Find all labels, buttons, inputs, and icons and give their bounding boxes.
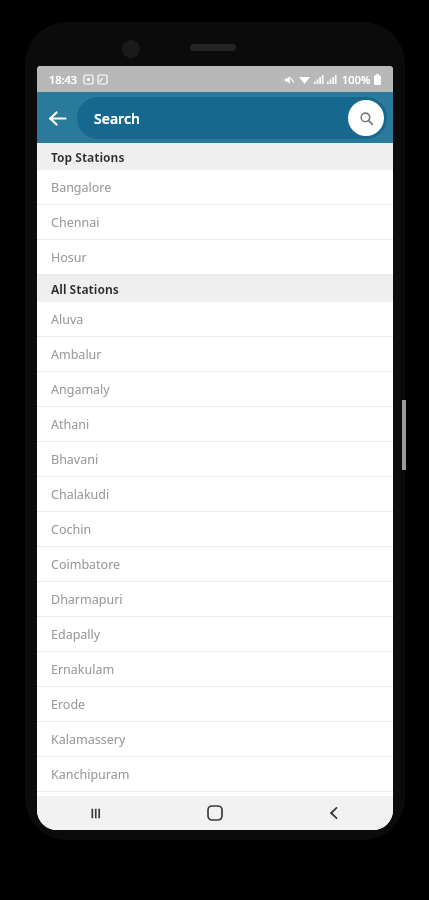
staticText: Angamaly: [51, 381, 110, 398]
staticText: 100%: [342, 72, 371, 87]
staticText: Ambalur: [51, 346, 102, 363]
button[interactable]: Recent apps: [37, 796, 155, 830]
button[interactable]: Home: [155, 796, 274, 830]
button[interactable]: Back: [37, 98, 77, 138]
button[interactable]: Aluva: [37, 302, 393, 337]
staticText: Bangalore: [51, 179, 112, 196]
button[interactable]: Coimbatore: [37, 547, 393, 582]
button[interactable]: Cochin: [37, 512, 393, 547]
button[interactable]: Erode: [37, 687, 393, 722]
staticText: Top Stations: [51, 149, 125, 165]
button[interactable]: Back: [274, 796, 393, 830]
button[interactable]: Ernakulam: [37, 652, 393, 687]
button[interactable]: Chalakudi: [37, 477, 393, 512]
button[interactable]: Kalamassery: [37, 722, 393, 757]
staticText: Bhavani: [51, 451, 99, 468]
button[interactable]: Search: [77, 97, 387, 139]
button[interactable]: Chennai: [37, 205, 393, 240]
staticText: 18:43: [49, 72, 78, 87]
staticText: Hosur: [51, 249, 87, 266]
staticText: Edapally: [51, 626, 101, 643]
staticText: Chalakudi: [51, 486, 110, 503]
staticText: Coimbatore: [51, 556, 121, 573]
staticText: Ernakulam: [51, 661, 115, 678]
button[interactable]: Dharmapuri: [37, 582, 393, 617]
button[interactable]: Bhavani: [37, 442, 393, 477]
button[interactable]: Edapally: [37, 617, 393, 652]
staticText: Aluva: [51, 311, 84, 328]
staticText: Dharmapuri: [51, 591, 123, 608]
button[interactable]: Search: [348, 100, 384, 136]
staticText: Kanchipuram: [51, 766, 130, 783]
button[interactable]: Ambalur: [37, 337, 393, 372]
staticText: Erode: [51, 696, 86, 713]
button[interactable]: Hosur: [37, 240, 393, 275]
staticText: Chennai: [51, 214, 100, 231]
button[interactable]: Athani: [37, 407, 393, 442]
button[interactable]: Angamaly: [37, 372, 393, 407]
staticText: Cochin: [51, 521, 92, 538]
button[interactable]: Kanchipuram: [37, 757, 393, 792]
staticText: Search: [94, 109, 140, 128]
staticText: All Stations: [51, 281, 119, 297]
staticText: Kalamassery: [51, 731, 126, 748]
staticText: Athani: [51, 416, 90, 433]
button[interactable]: Bangalore: [37, 170, 393, 205]
